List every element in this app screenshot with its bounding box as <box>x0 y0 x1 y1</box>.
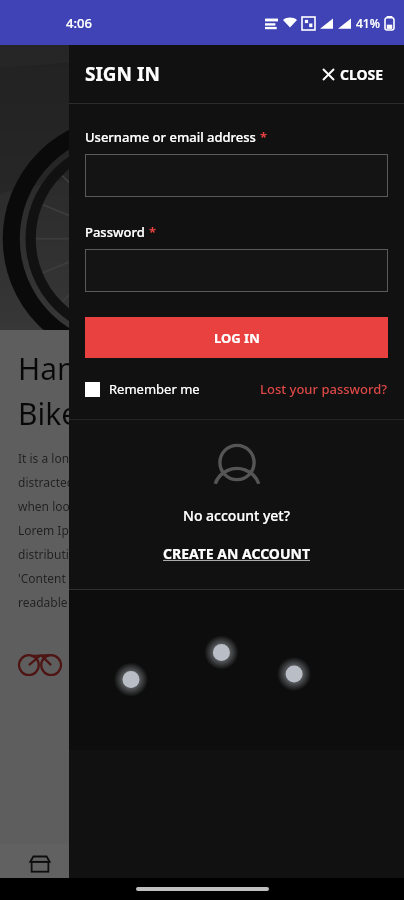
button[interactable]: Remember me <box>85 377 200 401</box>
staticText: Username or email address <box>85 128 256 146</box>
staticText: It is a long established fact that a rea… <box>18 450 284 466</box>
button[interactable]: SIGN IN <box>85 61 160 87</box>
button[interactable]: CREATE AN ACCOUNT <box>159 542 314 565</box>
button[interactable]: LOG IN <box>85 317 388 358</box>
staticText: 'Content here, content here', making it … <box>18 570 285 586</box>
staticText: Bikes <box>18 393 93 434</box>
staticText: LOG IN <box>214 329 260 347</box>
staticText: readable English. <box>18 594 115 610</box>
staticText: distribution of letters, as opposed to u… <box>18 546 258 562</box>
staticText: CLOSE <box>340 65 384 84</box>
staticText: No account yet? <box>183 506 290 525</box>
button[interactable]: CLOSE <box>319 61 388 88</box>
staticText: 41% <box>356 15 380 31</box>
staticText: Remember me <box>109 380 200 398</box>
button[interactable] <box>85 154 388 197</box>
staticText: Lorem Ipsum is that it has a more-or-les… <box>18 522 293 538</box>
staticText: * <box>260 128 268 146</box>
button[interactable]: Lost your password? <box>260 377 388 401</box>
staticText: * <box>149 223 157 241</box>
staticText: when looking at its layout. The point of… <box>18 498 272 514</box>
button[interactable]: Shop <box>0 853 80 892</box>
staticText: 4:06 <box>66 14 92 32</box>
staticText: distracted by the readable content of a … <box>18 474 268 490</box>
staticText: Password <box>85 223 145 241</box>
staticText: Handmade <box>18 348 175 389</box>
button[interactable] <box>85 249 388 292</box>
